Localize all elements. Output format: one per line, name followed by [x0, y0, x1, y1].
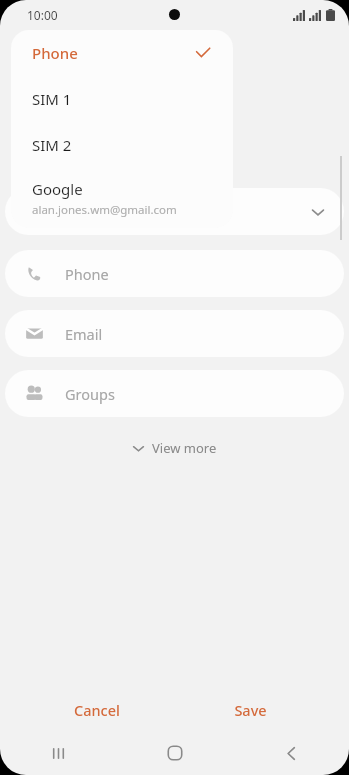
button[interactable]: Cancel	[57, 694, 137, 726]
button[interactable]: Groups	[5, 370, 344, 417]
button[interactable]: Recents	[0, 731, 117, 775]
staticText: Phone	[65, 264, 109, 284]
staticText: 10:00	[27, 7, 58, 23]
button[interactable]: Phone	[11, 30, 233, 76]
staticText: Groups	[65, 384, 115, 404]
staticText: Cancel	[74, 700, 120, 720]
staticText: SIM 1	[32, 89, 72, 109]
button[interactable]: Email	[5, 310, 344, 357]
button[interactable]: Google	[11, 168, 233, 228]
button[interactable]: Phone	[5, 250, 344, 297]
staticText: SIM 2	[32, 135, 72, 155]
button[interactable]: SIM 1	[11, 76, 233, 122]
button[interactable]: SIM 2	[11, 122, 233, 168]
staticText: Phone	[32, 43, 78, 63]
button[interactable]: Back	[233, 731, 349, 775]
button[interactable]: Home	[117, 731, 233, 775]
staticText: alan.jones.wm@gmail.com	[32, 202, 177, 218]
staticText: Google	[32, 179, 83, 199]
button[interactable]: Save	[212, 694, 288, 726]
staticText: Email	[65, 324, 103, 344]
other: Selected	[195, 45, 211, 61]
staticText: View more	[152, 439, 217, 457]
staticText: Save	[234, 700, 267, 720]
button[interactable]: View more	[122, 432, 227, 464]
other: Expand account	[310, 204, 326, 220]
button[interactable]: Expand account	[5, 188, 344, 235]
